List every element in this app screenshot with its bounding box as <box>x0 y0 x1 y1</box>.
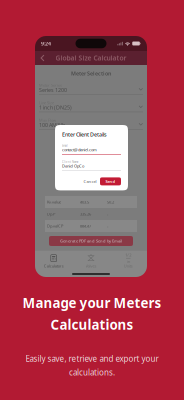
button[interactable]: Valves <box>72 254 110 268</box>
staticText: 100 AM3/h <box>39 121 65 129</box>
staticText: 50.2 <box>107 199 114 205</box>
staticText: Dp-P <box>47 211 55 217</box>
staticText: 9:24 <box>41 40 51 47</box>
staticText: Meter Selection <box>71 70 111 77</box>
staticText: Global Size Calculator <box>55 54 126 62</box>
staticText: Send <box>105 179 115 184</box>
staticText: Valves <box>85 263 96 268</box>
staticText: Dp-valCP <box>47 223 63 229</box>
staticText: Series 1200 <box>39 86 67 94</box>
staticText: 1/2 <box>125 252 131 257</box>
button[interactable]: Generate PDF and Send by Email <box>49 236 133 246</box>
staticText: Generate PDF and Send by Email <box>60 238 122 244</box>
staticText: - <box>107 223 108 229</box>
staticText: Email <box>62 144 68 147</box>
staticText: Daniel OpCo <box>62 163 84 168</box>
staticText: Units <box>124 263 133 268</box>
staticText: 403.5 <box>80 199 89 205</box>
staticText: Manage your Meters <box>22 294 161 312</box>
button[interactable]: Cancel <box>82 177 98 185</box>
staticText: Client Name <box>62 160 79 164</box>
button[interactable]: Send <box>100 177 121 185</box>
staticText: in <box>127 259 130 264</box>
staticText: Kv-value <box>47 199 61 205</box>
staticText: Easily save, retrieve and export your <box>25 353 158 364</box>
staticText: 884.47 <box>80 223 91 229</box>
staticText: contact@daniel.com <box>62 147 97 152</box>
button[interactable]: Max Flow <box>39 117 143 130</box>
button[interactable]: Meter Series <box>39 82 143 95</box>
button[interactable]: Back <box>37 51 48 65</box>
staticText: 1 inch (DN25) <box>39 104 72 111</box>
staticText: Cancel <box>83 179 96 184</box>
button[interactable]: Line Size <box>39 100 143 112</box>
staticText: Calculators <box>44 263 64 268</box>
staticText: Enter Client Details <box>62 131 107 138</box>
staticText: calculations. <box>69 367 115 378</box>
staticText: 335.26 <box>80 211 91 217</box>
button[interactable]: Calculators <box>35 254 72 268</box>
staticText: Calculations <box>50 316 133 333</box>
